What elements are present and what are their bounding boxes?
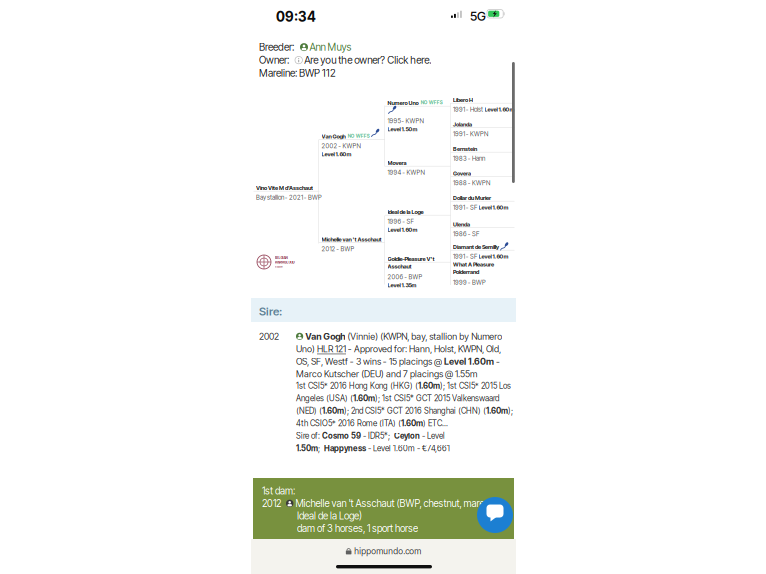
staticText: 2006 - BWP — [387, 273, 422, 281]
staticText: Level 1.50m — [387, 126, 417, 133]
staticText: Michelle van 't Asschaut (BWP, chestnut,… — [295, 497, 498, 509]
staticText: Uno) HLR 121 - Approved for: Hann, Holst… — [296, 343, 501, 354]
staticText: 2012 - BWP — [321, 245, 354, 253]
staticText: 1991 - SF — [453, 204, 477, 211]
staticText: Van Gogh — [321, 133, 345, 140]
button[interactable]: Chat with us — [475, 495, 515, 535]
staticText: OS, SF, Westf - 3 wins - 15 placings @ L… — [296, 356, 500, 367]
staticText: Ideal de la Loge — [387, 208, 423, 215]
staticText: 2002 — [259, 331, 279, 342]
staticText: 2002 - KWPN — [321, 142, 360, 150]
staticText: Marco Kutscher (DEU) and 7 placings @ 1.… — [296, 368, 477, 379]
staticText: Libero H — [453, 96, 473, 103]
staticText: Level 1.60m — [485, 106, 515, 113]
staticText: Vino Vite M d'Asschaut — [256, 184, 313, 191]
staticText: Level 1.35m — [387, 282, 416, 289]
staticText: Diamant de Semilly — [453, 243, 499, 250]
staticText: Movera — [387, 159, 406, 166]
staticText: 1.50m; Happyness - Level 1.60m - €74,661 — [296, 443, 450, 453]
staticText: Jolanda — [453, 121, 472, 128]
staticText: Level 1.60m — [321, 151, 351, 157]
staticText: 2012 — [262, 497, 281, 509]
staticText: Van Gogh (Vinnie) (KWPN, bay, stallion b… — [305, 331, 502, 342]
staticText: 1991 - Holst — [453, 106, 483, 113]
staticText: studbook — [274, 265, 282, 268]
staticText: Ulenda — [453, 221, 470, 228]
staticText: Breeder: — [259, 41, 300, 53]
staticText: Sire of: Cosmo 59 - IDR5*; Ceylon - Leve… — [296, 431, 445, 440]
staticText: Mareline: BWP 112 — [259, 67, 336, 79]
staticText: Asschaut — [387, 263, 411, 270]
staticText: dam of 3 horses, 1 sport horse — [297, 522, 418, 534]
staticText: Level 1.60m — [479, 204, 509, 211]
staticText: 09:34 — [276, 8, 316, 25]
staticText: Govera — [453, 170, 471, 177]
staticText: 1999 - BWP — [453, 279, 486, 286]
staticText: 1st dam: — [262, 485, 295, 497]
staticText: Bernstein — [453, 145, 477, 152]
staticText: 1991 - SF — [453, 253, 477, 260]
staticText: (NED) (1.60m); 2nd CSI5* GCT 2016 Shangh… — [296, 406, 513, 415]
staticText: 4th CSIO5* 2016 Rome (ITA) (1.60m) ETC..… — [296, 418, 448, 428]
staticText: Angeles (USA) (1.60m); 1st CSI5* GCT 201… — [296, 393, 499, 403]
staticText: Michelle van 't Asschaut — [321, 236, 381, 243]
staticText: 1994 - KWPN — [387, 169, 424, 176]
staticText: 1996 - SF — [387, 218, 413, 225]
button[interactable]: hippomundo.com — [346, 546, 421, 556]
staticText: WARMBLOOD — [274, 260, 294, 264]
staticText: 5G — [470, 8, 486, 24]
staticText: Level 1.60m — [387, 226, 417, 233]
staticText: 1st CSI5* 2016 Hong Kong (HKG) (1.60m); … — [296, 381, 511, 390]
staticText: BELGIAN — [274, 256, 287, 260]
staticText: Owner: — [259, 54, 295, 66]
staticText: 1991 - KWPN — [453, 130, 488, 138]
staticText: 1986 - SF — [453, 230, 479, 238]
staticText: Level 1.60m — [479, 253, 509, 260]
staticText: Ann Muys — [310, 41, 352, 53]
staticText: NO WFFS — [421, 99, 443, 105]
staticText: 1983 - Hann — [453, 155, 485, 162]
staticText: 1988 - KWPN — [453, 179, 490, 187]
staticText: Bay stallion - 2021 - BWP — [256, 194, 322, 201]
button[interactable]: Are you the owner? Click here. — [295, 54, 431, 66]
staticText: Dollar du Murier — [453, 194, 491, 201]
staticText: What A Pleasure — [453, 261, 494, 268]
staticText: Sire: — [259, 304, 282, 318]
staticText: Goldie-Pleasure V't — [387, 255, 434, 262]
staticText: 1995 - KWPN — [387, 117, 423, 125]
staticText: NO WFFS — [348, 133, 370, 139]
staticText: Ideal de la Loge) — [297, 510, 362, 522]
staticText: Are you the owner? Click here. — [304, 54, 431, 66]
staticText: Polderrand — [453, 269, 479, 275]
button[interactable]: Ann Muys — [300, 41, 352, 53]
staticText: hippomundo.com — [354, 546, 421, 556]
staticText: Numero Uno — [387, 99, 418, 106]
